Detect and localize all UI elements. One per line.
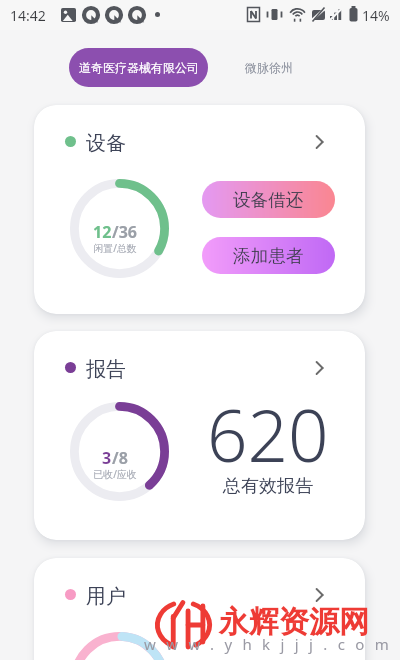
staticText: /8 [112,447,128,469]
staticText: 添加患者 [233,245,304,267]
staticText: www.yhkjjj.com [144,634,400,654]
staticText: 14:42 [10,6,46,25]
staticText: 620 [207,386,329,483]
button[interactable]: 用户 [34,558,365,660]
button[interactable]: More [304,582,330,608]
button[interactable]: More [304,355,330,381]
staticText: 3 [102,447,112,469]
staticText: 12 [93,221,112,243]
button[interactable]: 道奇医疗器械有限公司 [69,48,208,87]
button[interactable]: 设备 [34,105,365,314]
staticText: 微脉徐州 [245,60,293,75]
button[interactable]: 微脉徐州 [237,48,301,87]
staticText: 永辉资源网 [219,603,369,641]
button[interactable]: 报告 [34,331,365,540]
button[interactable]: 设备借还 [202,181,335,218]
staticText: /36 [112,221,137,243]
staticText: 用户 [86,584,126,609]
staticText: 报告 [86,357,126,382]
staticText: 设备 [86,131,126,156]
staticText: 总有效报告 [223,475,313,498]
button[interactable]: More [304,129,330,155]
button[interactable]: 添加患者 [202,237,335,274]
staticText: 14% [362,6,390,25]
staticText: 441 [207,640,329,660]
staticText: 闲置/总数 [93,241,137,255]
staticText: 道奇医疗器械有限公司 [79,60,199,75]
staticText: 已收/应收 [93,467,137,481]
staticText: 设备借还 [233,189,304,211]
